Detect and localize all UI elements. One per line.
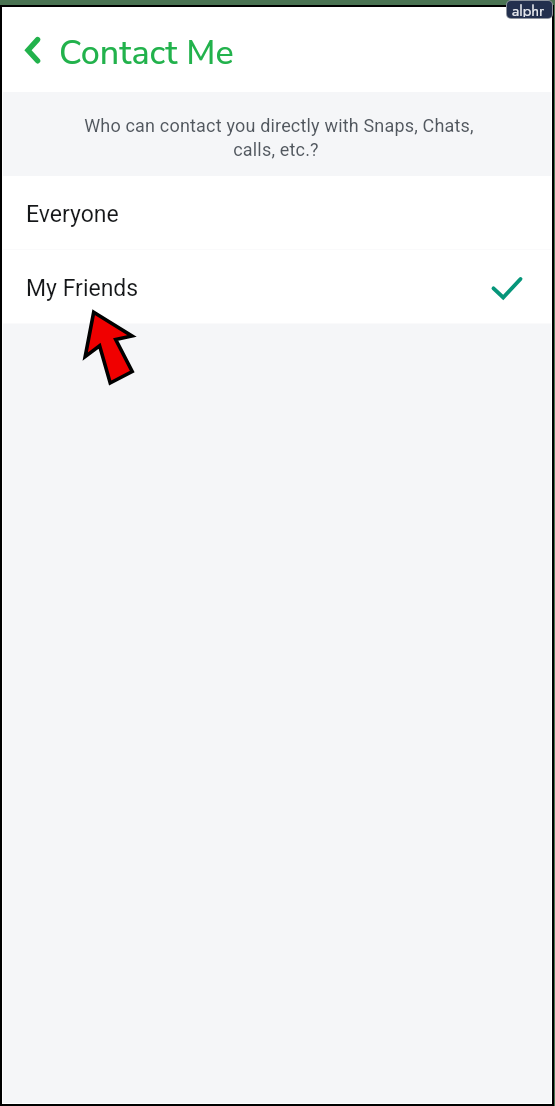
- staticText: alphr: [512, 1, 545, 17]
- button[interactable]: My Friends: [3, 250, 551, 324]
- staticText: Contact Me: [59, 30, 234, 76]
- staticText: My Friends: [26, 275, 139, 302]
- staticText: calls, etc.?: [2, 139, 550, 160]
- staticText: Everyone: [26, 201, 119, 228]
- button[interactable]: Back: [13, 26, 53, 66]
- button[interactable]: Everyone: [3, 176, 551, 250]
- staticText: Who can contact you directly with Snaps,…: [5, 115, 553, 136]
